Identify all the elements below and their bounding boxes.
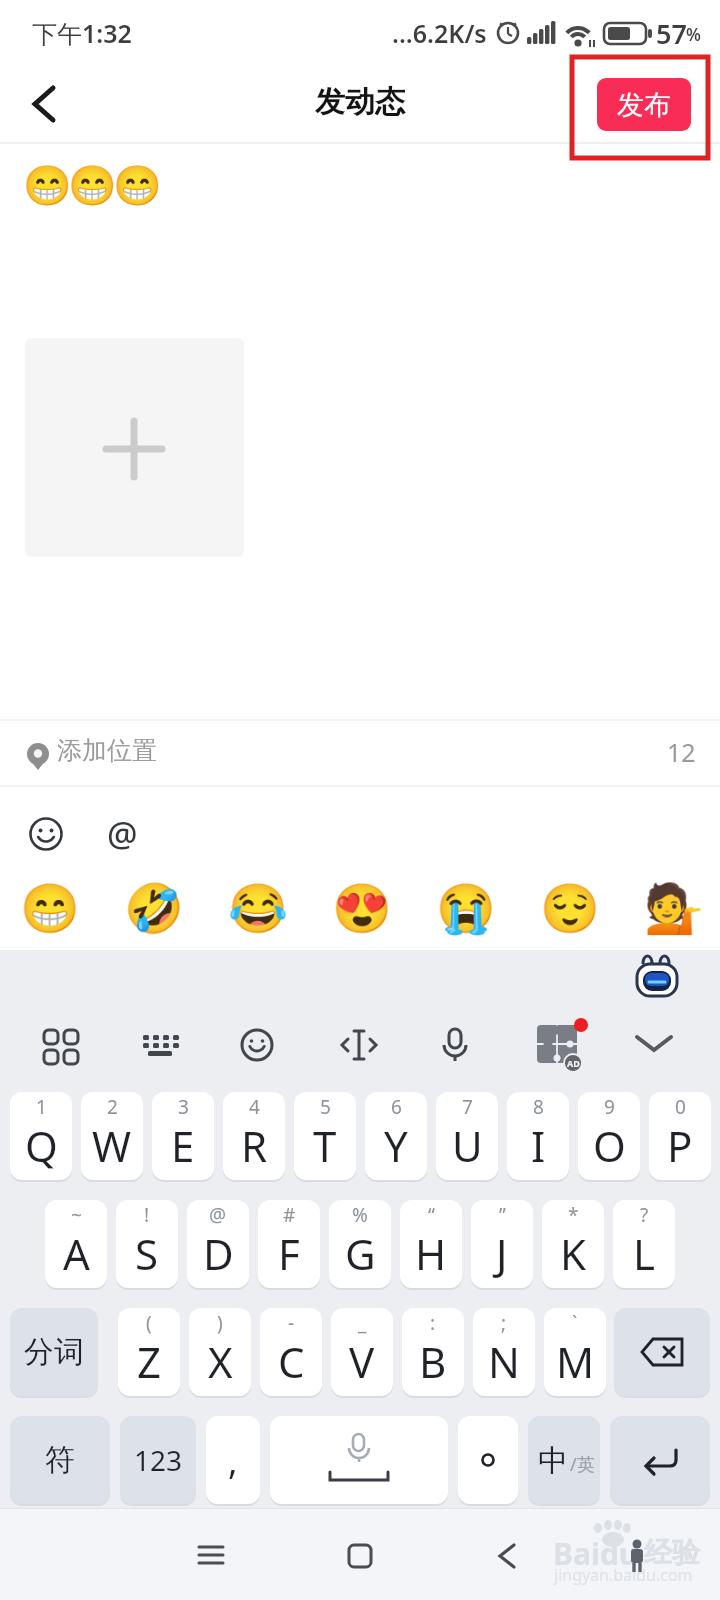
staticText: 3	[178, 1094, 189, 1118]
button[interactable]	[128, 882, 178, 932]
button[interactable]	[270, 1416, 448, 1504]
staticText: 123	[134, 1441, 183, 1479]
button[interactable]: %	[329, 1200, 391, 1288]
button[interactable]: ;	[473, 1308, 535, 1396]
button[interactable]: 6	[365, 1092, 427, 1180]
staticText: L	[633, 1225, 656, 1282]
button[interactable]	[232, 882, 282, 932]
button[interactable]: “	[400, 1200, 462, 1288]
button[interactable]: `	[544, 1308, 606, 1396]
staticText: 😭	[436, 881, 496, 937]
staticText: 😁	[113, 163, 162, 209]
button[interactable]: _	[331, 1308, 393, 1396]
staticText: :	[430, 1310, 436, 1334]
button[interactable]: 7	[436, 1092, 498, 1180]
staticText: 8	[533, 1094, 544, 1118]
button[interactable]: 0	[649, 1092, 711, 1180]
button[interactable]	[24, 882, 74, 932]
button[interactable]	[458, 1416, 518, 1504]
staticText: 符	[45, 1441, 75, 1479]
staticText: _	[358, 1310, 367, 1334]
button[interactable]	[238, 1026, 282, 1064]
button[interactable]	[440, 882, 490, 932]
staticText: P	[667, 1117, 693, 1174]
button[interactable]: #	[258, 1200, 320, 1288]
staticText: 4	[249, 1094, 260, 1118]
staticText: 添加位置	[57, 735, 157, 766]
button[interactable]: 123	[120, 1416, 196, 1504]
button[interactable]: AD	[532, 1014, 592, 1074]
button[interactable]	[610, 1416, 710, 1504]
button[interactable]	[614, 1308, 710, 1396]
staticText: 💁	[644, 881, 704, 937]
button[interactable]	[436, 1026, 480, 1064]
button[interactable]: 1	[10, 1092, 72, 1180]
button[interactable]	[340, 1026, 384, 1064]
button[interactable]: 添加位置	[0, 721, 720, 785]
staticText: 57	[656, 15, 687, 52]
button[interactable]	[544, 882, 594, 932]
button[interactable]	[141, 1026, 185, 1064]
button[interactable]: )	[189, 1308, 251, 1396]
button[interactable]	[25, 338, 244, 557]
staticText: S	[135, 1225, 159, 1282]
staticText: jingyan.baidu.com	[554, 1564, 693, 1586]
button[interactable]	[336, 882, 386, 932]
button[interactable]	[40, 1026, 84, 1064]
staticText: “	[428, 1202, 435, 1226]
staticText: Z	[137, 1333, 162, 1390]
staticText: 1	[36, 1094, 47, 1118]
button[interactable]: 中	[528, 1416, 600, 1504]
staticText: 分词	[24, 1333, 84, 1371]
button[interactable]: !	[116, 1200, 178, 1288]
button[interactable]: -	[260, 1308, 322, 1396]
button[interactable]	[22, 810, 70, 858]
staticText: 2	[107, 1094, 118, 1118]
button[interactable]: 9	[578, 1092, 640, 1180]
staticText: 🤣	[124, 881, 184, 937]
staticText: F	[278, 1225, 300, 1282]
button[interactable]: @	[98, 810, 146, 858]
staticText: W	[92, 1117, 132, 1174]
button[interactable]: ”	[471, 1200, 533, 1288]
button[interactable]: ~	[45, 1200, 107, 1288]
staticText: 经验	[644, 1535, 700, 1570]
button[interactable]: 5	[294, 1092, 356, 1180]
staticText: I	[531, 1117, 546, 1174]
staticText: 😌	[540, 881, 600, 937]
staticText: 发动态	[315, 83, 405, 121]
button[interactable]: 符	[10, 1416, 110, 1504]
staticText: 😁	[68, 163, 117, 209]
staticText: 9	[604, 1094, 615, 1118]
button[interactable]: 8	[507, 1092, 569, 1180]
staticText: R	[241, 1117, 268, 1174]
button[interactable]: *	[542, 1200, 604, 1288]
staticText: `	[572, 1310, 578, 1334]
button[interactable]: 分词	[10, 1308, 98, 1396]
staticText: 5	[320, 1094, 331, 1118]
staticText: 😂	[228, 881, 288, 937]
staticText: !	[144, 1202, 150, 1226]
button[interactable]: @	[187, 1200, 249, 1288]
button[interactable]: ,	[206, 1416, 260, 1504]
button[interactable]: :	[402, 1308, 464, 1396]
button[interactable]: ?	[613, 1200, 675, 1288]
button[interactable]: (	[118, 1308, 180, 1396]
staticText: ,	[228, 1436, 238, 1485]
button[interactable]	[20, 80, 68, 128]
button[interactable]: 4	[223, 1092, 285, 1180]
staticText: D	[203, 1225, 234, 1282]
staticText: T	[313, 1117, 337, 1174]
staticText: @	[209, 1202, 227, 1226]
button[interactable]	[624, 1026, 668, 1064]
staticText: -	[288, 1310, 295, 1334]
staticText: E	[171, 1117, 195, 1174]
button[interactable]: 2	[81, 1092, 143, 1180]
staticText: @	[107, 811, 138, 857]
staticText: AD	[567, 1057, 580, 1069]
button[interactable]	[648, 882, 698, 932]
button[interactable]: 发布	[597, 78, 691, 131]
staticText: Y	[384, 1117, 408, 1174]
button[interactable]: 3	[152, 1092, 214, 1180]
staticText: ...6.2K/s	[392, 16, 487, 50]
